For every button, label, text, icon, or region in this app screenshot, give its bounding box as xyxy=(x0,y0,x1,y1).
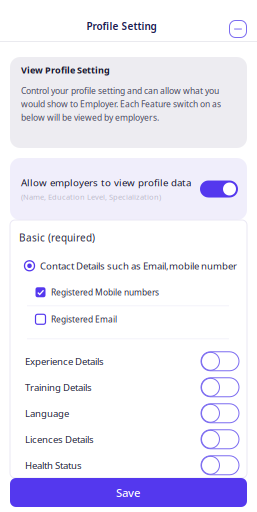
staticText: Control your profile setting and can all… xyxy=(21,85,221,123)
staticText: Allow employers to view profile data xyxy=(21,176,191,189)
staticText: Basic (required) xyxy=(19,231,95,244)
staticText: Language xyxy=(25,407,69,420)
button[interactable]: Contact Details such as Email,mobile num… xyxy=(10,252,247,279)
button[interactable]: Registered Email xyxy=(10,306,247,332)
staticText: Training Details xyxy=(25,381,92,394)
staticText: Licences Details xyxy=(25,433,94,446)
button[interactable]: Licences Details xyxy=(10,426,247,452)
button[interactable]: Allow employers to view profile data xyxy=(200,180,238,197)
staticText: Profile Setting xyxy=(86,19,156,33)
staticText: Registered Mobile numbers xyxy=(51,287,159,298)
button[interactable]: Collapse section xyxy=(228,19,248,39)
staticText: Registered Email xyxy=(51,314,117,325)
staticText: Health Status xyxy=(25,459,82,472)
staticText: (Name, Education Level, Specialization) xyxy=(21,192,161,202)
button[interactable]: Registered Mobile numbers xyxy=(10,279,247,305)
staticText: Experience Details xyxy=(25,355,104,368)
staticText: Contact Details such as Email,mobile num… xyxy=(40,259,237,272)
button[interactable]: Experience Details xyxy=(10,348,247,374)
staticText: Save xyxy=(116,485,141,500)
button[interactable]: Training Details xyxy=(10,374,247,400)
staticText: View Profile Setting xyxy=(21,64,110,76)
button[interactable]: Health Status xyxy=(10,452,247,478)
button[interactable]: Language xyxy=(10,400,247,426)
button[interactable]: Save xyxy=(10,478,247,507)
